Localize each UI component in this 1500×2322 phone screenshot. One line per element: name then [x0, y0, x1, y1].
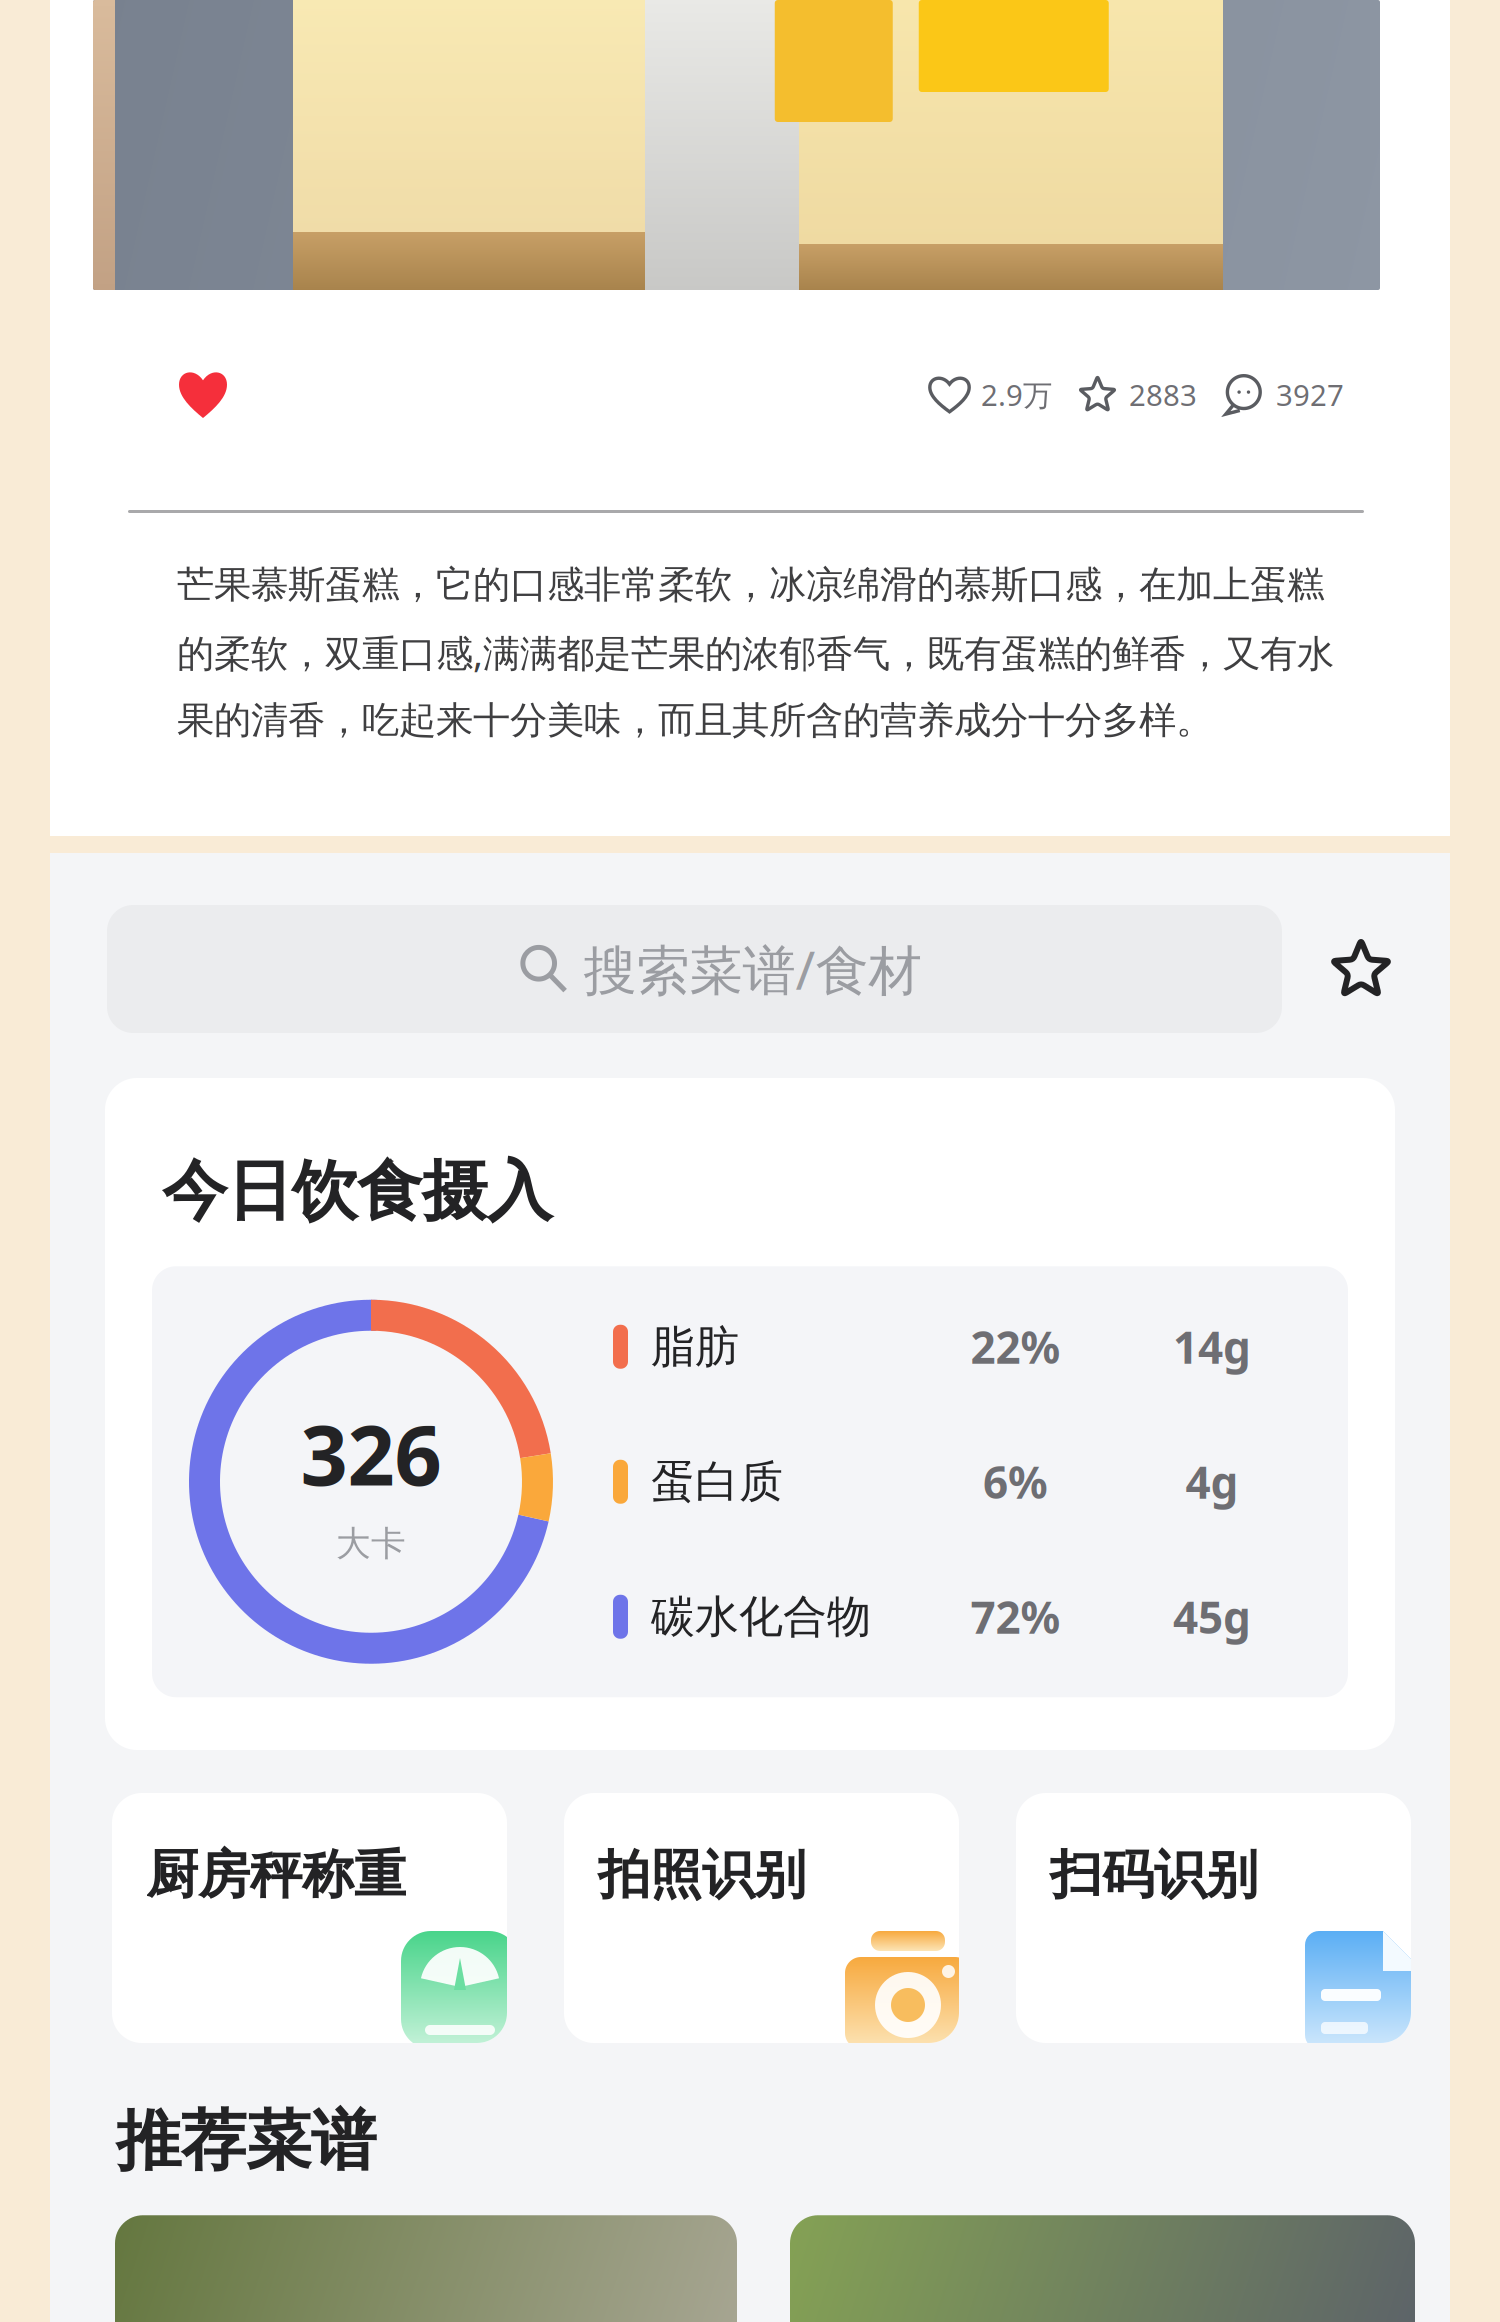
button[interactable]: Favorites: [1282, 905, 1392, 1033]
staticText: 45g: [1173, 1587, 1251, 1646]
staticText: 拍照识别: [598, 1843, 806, 1907]
staticText: 大卡: [336, 1522, 406, 1565]
button[interactable]: 搜索菜谱/食材: [107, 905, 1282, 1033]
staticText: 2883: [1129, 375, 1197, 414]
button[interactable]: Recipe one: [115, 2215, 737, 2322]
staticText: 碳水化合物: [651, 1590, 871, 1644]
button[interactable]: 3927: [1197, 366, 1450, 422]
staticText: 14g: [1173, 1317, 1251, 1376]
staticText: 扫码识别: [1050, 1843, 1258, 1907]
staticText: 推荐菜谱: [116, 2101, 376, 2181]
button[interactable]: 拍照识别: [564, 1793, 959, 2043]
staticText: 6%: [983, 1452, 1048, 1511]
button[interactable]: 扫码识别: [1016, 1793, 1411, 2043]
button[interactable]: 厨房秤称重: [112, 1793, 507, 2043]
staticText: 的柔软，双重口感,满满都是芒果的浓郁香气，既有蛋糕的鲜香，又有水: [177, 628, 1334, 677]
staticText: 果的清香，吃起来十分美味，而且其所含的营养成分十分多样。: [177, 697, 1213, 743]
staticText: 72%: [970, 1587, 1060, 1646]
staticText: 4g: [1185, 1452, 1238, 1511]
staticText: 搜索菜谱/食材: [583, 934, 921, 1004]
staticText: 厨房秤称重: [146, 1843, 406, 1907]
button[interactable]: Liked: [50, 362, 254, 427]
staticText: 3927: [1276, 375, 1344, 414]
staticText: 今日饮食摄入: [162, 1151, 552, 1231]
staticText: 蛋白质: [651, 1455, 783, 1509]
staticText: 2.9万: [981, 375, 1052, 414]
staticText: 芒果慕斯蛋糕，它的口感非常柔软，冰凉绵滑的慕斯口感，在加上蛋糕: [177, 562, 1324, 608]
button[interactable]: 2.9万: [929, 367, 1052, 422]
staticText: 22%: [970, 1317, 1060, 1376]
staticText: 脂肪: [651, 1320, 739, 1374]
button[interactable]: 2883: [1052, 367, 1197, 422]
staticText: 326: [300, 1399, 441, 1508]
button[interactable]: Recipe two: [790, 2215, 1415, 2322]
